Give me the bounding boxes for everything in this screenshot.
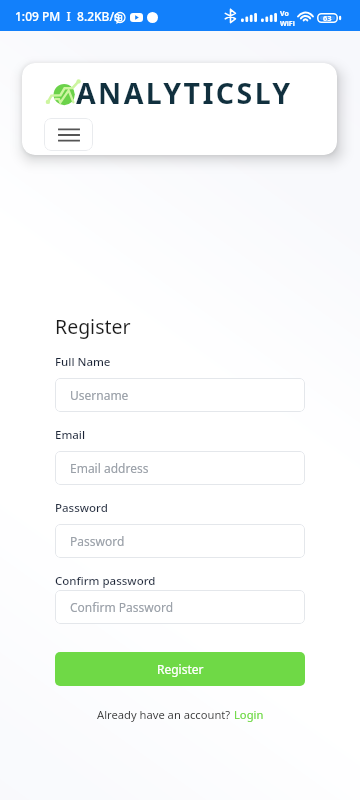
staticText: ANALYTICSLY xyxy=(76,74,293,113)
staticText: Email xyxy=(55,427,86,443)
staticText: Already have an account? xyxy=(97,707,234,722)
button[interactable]: Username xyxy=(55,378,305,412)
staticText: Register xyxy=(157,661,204,677)
staticText: Confirm Password xyxy=(70,599,174,615)
button[interactable]: Email address xyxy=(55,451,305,485)
staticText: Confirm password xyxy=(55,573,156,589)
staticText: Email address xyxy=(70,460,149,476)
button[interactable]: Password xyxy=(55,524,305,558)
button[interactable]: Register xyxy=(55,652,305,686)
staticText: Vo xyxy=(280,9,289,19)
staticText: Password xyxy=(55,500,108,516)
button[interactable]: Open navigation menu xyxy=(44,118,93,151)
staticText: Password xyxy=(70,533,125,549)
staticText: 63 xyxy=(323,13,332,23)
staticText: 1:09 PM I 8.2KB/s xyxy=(15,8,120,24)
staticText: WiFi xyxy=(280,19,295,29)
staticText: Register xyxy=(55,313,131,340)
staticText: Full Name xyxy=(55,354,111,370)
button[interactable]: Confirm Password xyxy=(55,590,305,624)
button[interactable]: Login xyxy=(234,707,264,722)
staticText: Username xyxy=(70,387,129,403)
